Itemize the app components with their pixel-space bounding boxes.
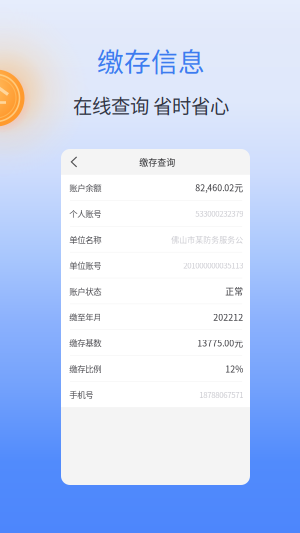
button[interactable]: 缴存比例 xyxy=(61,356,250,381)
staticText: 佛山市某防务服务公 xyxy=(171,233,243,245)
button[interactable]: 单位账号 xyxy=(61,252,250,278)
staticText: 18788067571 xyxy=(199,389,243,400)
button[interactable]: 缴存基数 xyxy=(61,330,250,355)
button[interactable]: 返回 xyxy=(64,149,83,175)
staticText: 账户状态 xyxy=(69,285,101,297)
staticText: 82,460.02元 xyxy=(195,181,243,194)
button[interactable]: 个人账号 xyxy=(61,201,250,226)
button[interactable]: 手机号 xyxy=(61,382,250,407)
staticText: 缴存基数 xyxy=(69,337,101,349)
staticText: 13775.00元 xyxy=(197,336,243,349)
staticText: 缴至年月 xyxy=(69,311,101,323)
staticText: 缴存信息 xyxy=(97,41,205,79)
button[interactable]: 缴至年月 xyxy=(61,304,250,329)
staticText: 手机号 xyxy=(69,388,93,401)
staticText: 202212 xyxy=(213,310,243,323)
staticText: 在线查询 省时省心 xyxy=(73,91,229,119)
staticText: 正常 xyxy=(225,285,243,297)
staticText: 12% xyxy=(225,362,243,375)
staticText: 201000000035113 xyxy=(183,259,243,271)
button[interactable]: 单位名称 xyxy=(61,226,250,252)
staticText: 单位名称 xyxy=(69,233,101,245)
staticText: 缴存查询 xyxy=(139,155,175,168)
button[interactable]: 账户状态 xyxy=(61,278,250,304)
staticText: 缴存比例 xyxy=(69,362,101,375)
staticText: 单位账号 xyxy=(69,259,101,271)
staticText: 533000232379 xyxy=(195,208,243,219)
staticText: 账户余额 xyxy=(69,181,101,194)
button[interactable]: 账户余额 xyxy=(61,175,250,200)
staticText: 个人账号 xyxy=(69,207,101,219)
